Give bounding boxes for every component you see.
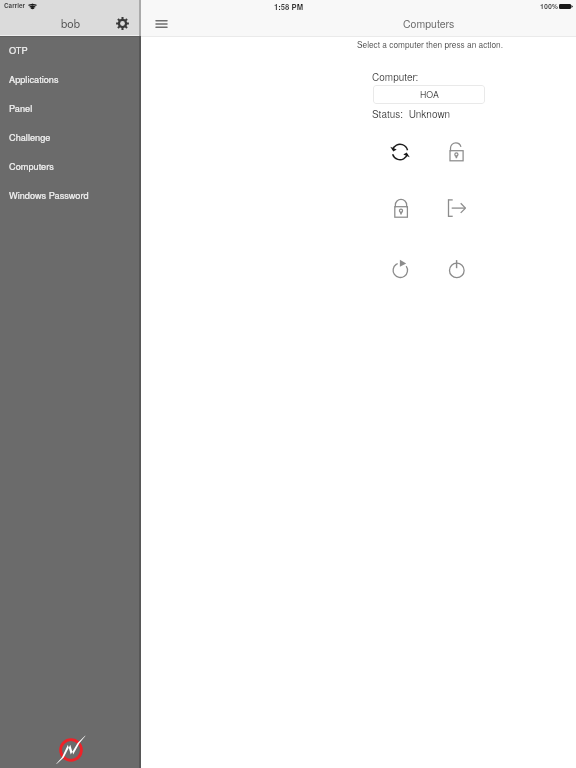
staticText: Carrier <box>4 1 25 10</box>
staticText: Computers <box>403 16 455 31</box>
button[interactable]: Shut down <box>442 254 472 284</box>
staticText: Computers <box>9 159 54 172</box>
button[interactable]: Sync <box>385 137 415 167</box>
staticText: 1:58 PM <box>274 1 304 12</box>
staticText: OTP <box>9 43 28 56</box>
button[interactable]: Restart <box>385 254 415 284</box>
button[interactable]: HOA <box>373 85 485 104</box>
staticText: HOA <box>420 88 439 101</box>
button[interactable]: Panel <box>0 94 139 123</box>
button[interactable]: Menu <box>141 6 171 40</box>
staticText: Select a computer then press an action. <box>357 38 503 50</box>
button[interactable]: Log off <box>442 193 472 223</box>
staticText: Computer: <box>372 70 419 84</box>
staticText: Windows Password <box>9 188 89 201</box>
staticText: Status: Unknown <box>372 107 451 121</box>
button[interactable]: Settings <box>110 11 134 35</box>
staticText: bob <box>61 15 80 31</box>
button[interactable]: Challenge <box>0 123 139 152</box>
button[interactable]: Unlock <box>441 137 471 167</box>
button[interactable]: Logo <box>52 731 90 768</box>
button[interactable]: Lock <box>386 193 416 223</box>
button[interactable]: Computers <box>0 152 139 181</box>
button[interactable]: OTP <box>0 36 139 65</box>
staticText: Challenge <box>9 130 51 143</box>
staticText: Panel <box>9 101 33 114</box>
staticText: 100% <box>540 1 559 11</box>
button[interactable]: Windows Password <box>0 181 139 210</box>
staticText: Applications <box>9 72 59 85</box>
button[interactable]: Applications <box>0 65 139 94</box>
